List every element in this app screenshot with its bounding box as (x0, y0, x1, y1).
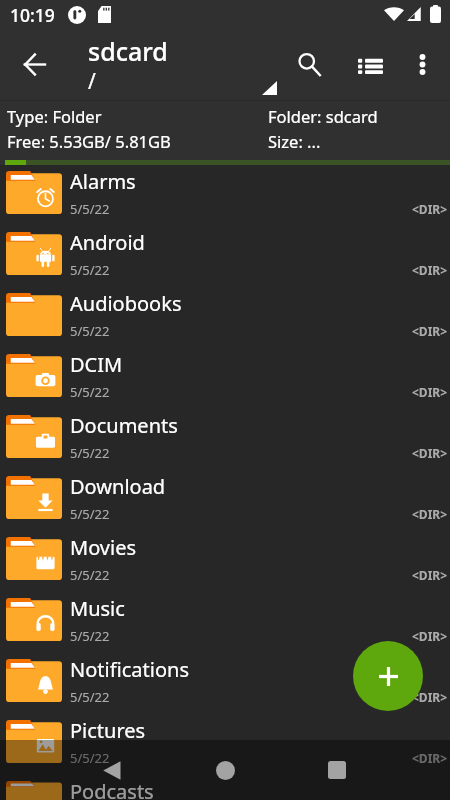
staticText: Audiobooks (70, 290, 182, 317)
button[interactable]: More options (399, 41, 446, 88)
staticText: Android (70, 229, 145, 256)
staticText: 5/5/22 (70, 200, 110, 218)
staticText: Podcasts (70, 778, 154, 800)
staticText: <DIR> (412, 384, 448, 400)
button[interactable]: Podcasts (0, 775, 450, 800)
staticText: 5/5/22 (70, 749, 110, 767)
button[interactable]: Back (11, 41, 58, 88)
staticText: 5/5/22 (70, 566, 110, 584)
staticText: Music (70, 595, 125, 622)
staticText: <DIR> (412, 689, 448, 705)
button[interactable]: Search (286, 41, 333, 88)
staticText: DCIM (70, 351, 123, 378)
staticText: <DIR> (412, 201, 448, 217)
staticText: 5/5/22 (70, 383, 110, 401)
staticText: Free: 5.53GB/ 5.81GB (7, 130, 171, 152)
staticText: 5/5/22 (70, 444, 110, 462)
staticText: Download (70, 473, 166, 500)
button[interactable]: DCIM (0, 348, 450, 409)
staticText: <DIR> (412, 445, 448, 461)
button[interactable]: Notifications (0, 653, 450, 714)
staticText: <DIR> (412, 323, 448, 339)
staticText: <DIR> (412, 750, 448, 766)
staticText: 5/5/22 (70, 627, 110, 645)
button[interactable]: Back (88, 746, 136, 794)
staticText: Movies (70, 534, 137, 561)
staticText: Pictures (70, 717, 146, 744)
staticText: 5/5/22 (70, 688, 110, 706)
staticText: 10:19 (10, 3, 55, 27)
staticText: <DIR> (412, 628, 448, 644)
staticText: <DIR> (412, 506, 448, 522)
staticText: Folder: sdcard (268, 105, 378, 127)
button[interactable]: Add (353, 641, 423, 711)
button[interactable]: Recents (313, 746, 361, 794)
button[interactable]: Movies (0, 531, 450, 592)
staticText: Size: ... (268, 130, 321, 152)
button[interactable]: List view (347, 41, 394, 88)
staticText: 5/5/22 (70, 261, 110, 279)
button[interactable]: Pictures (0, 714, 450, 775)
staticText: Type: Folder (7, 105, 102, 127)
staticText: 5/5/22 (70, 505, 110, 523)
staticText: Notifications (70, 656, 189, 683)
button[interactable]: Download (0, 470, 450, 531)
button[interactable]: Alarms (0, 165, 450, 226)
staticText: Documents (70, 412, 178, 439)
button[interactable]: Home (201, 746, 249, 794)
staticText: Alarms (70, 168, 136, 195)
staticText: 5/5/22 (70, 322, 110, 340)
staticText: sdcard (88, 34, 168, 68)
button[interactable]: Documents (0, 409, 450, 470)
staticText: <DIR> (412, 262, 448, 278)
button[interactable]: Music (0, 592, 450, 653)
button[interactable]: Audiobooks (0, 287, 450, 348)
button[interactable]: Android (0, 226, 450, 287)
staticText: / (88, 67, 96, 96)
staticText: <DIR> (412, 567, 448, 583)
